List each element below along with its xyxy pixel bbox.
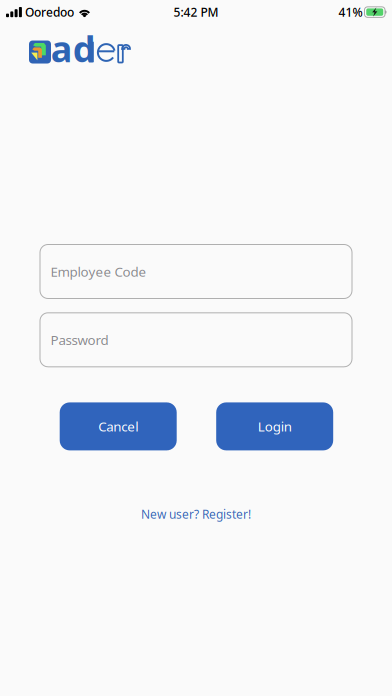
staticText: 41%	[338, 4, 362, 20]
staticText: Login	[258, 417, 292, 435]
staticText: Ooredoo	[25, 4, 74, 20]
staticText: ad	[51, 24, 96, 72]
staticText: Cancel	[98, 417, 138, 435]
staticText: New user? Register!	[141, 506, 251, 522]
staticText: 5:42 PM	[173, 4, 218, 20]
button[interactable]: New user? Register!	[136, 503, 256, 525]
button[interactable]: Employee Code	[40, 244, 352, 298]
button[interactable]: Login	[216, 402, 333, 450]
button[interactable]: Password	[40, 313, 352, 367]
button[interactable]: Cancel	[60, 402, 177, 450]
staticText: Employee Code	[50, 263, 146, 280]
staticText: Password	[50, 331, 108, 349]
